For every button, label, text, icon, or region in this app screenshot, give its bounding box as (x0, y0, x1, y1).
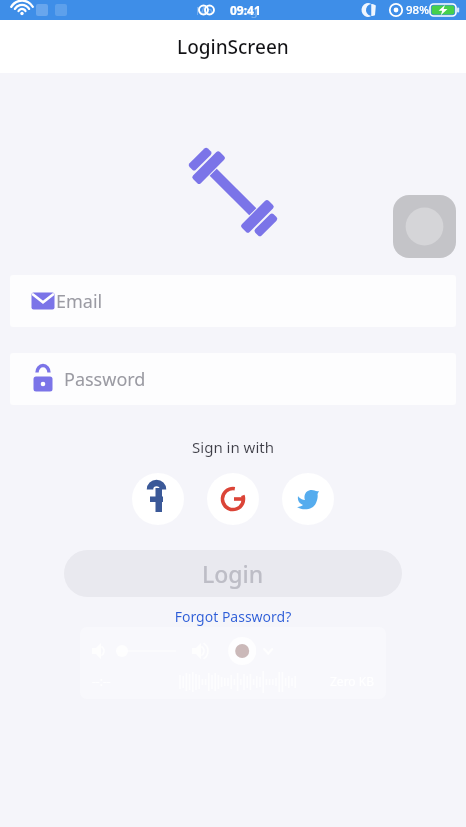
staticText: LoginScreen (177, 34, 289, 60)
staticText: 09:41 (230, 2, 261, 18)
button[interactable]: Sign in with Facebook (132, 473, 184, 525)
staticText: Email (56, 289, 103, 314)
staticText: Login (202, 558, 264, 589)
staticText: Mo ing (196, 3, 258, 18)
staticText: Password (64, 367, 146, 392)
staticText: 98% (406, 2, 429, 18)
button[interactable]: Record (393, 195, 456, 258)
button[interactable]: Email (10, 275, 456, 327)
staticText: Sign in with (0, 437, 466, 457)
button[interactable]: Login (64, 550, 402, 597)
button[interactable]: Sign in with Google (207, 473, 259, 525)
button[interactable]: Password (10, 353, 456, 405)
staticText: Forgot Password? (0, 607, 466, 626)
button[interactable]: Forgot Password? (0, 607, 466, 626)
button[interactable]: Sign in with Twitter (282, 473, 334, 525)
